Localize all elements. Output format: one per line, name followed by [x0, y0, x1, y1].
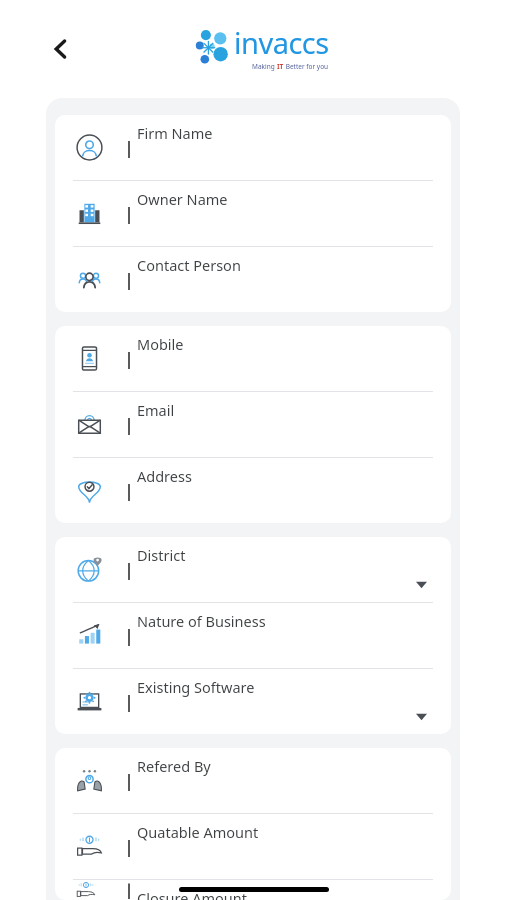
staticText: Existing Software [137, 677, 255, 697]
other: Refered by [55, 748, 123, 813]
button[interactable]: Email [55, 392, 451, 457]
staticText: invaccs [234, 23, 329, 62]
staticText: Making [252, 62, 277, 71]
staticText: IT [277, 62, 284, 71]
other: Quatable amount [55, 814, 123, 879]
button[interactable]: Closure amount [55, 880, 451, 900]
button[interactable]: Firm [55, 115, 451, 180]
staticText: Quatable Amount [137, 822, 259, 842]
staticText: Owner Name [137, 189, 228, 209]
other: Closure amount [55, 880, 123, 900]
button[interactable]: District [55, 537, 451, 602]
staticText: Refered By [137, 756, 211, 776]
other: Contact person [55, 247, 123, 312]
button[interactable]: Back [44, 32, 78, 66]
other: District [55, 537, 123, 602]
other: Nature of business [55, 603, 123, 668]
staticText: Nature of Business [137, 611, 266, 631]
staticText: Closure Amount [137, 888, 247, 900]
other: Existing software [55, 669, 123, 734]
staticText: Address [137, 466, 192, 486]
other: Email [55, 392, 123, 457]
button[interactable]: Existing software [55, 669, 451, 734]
staticText: District [137, 545, 186, 565]
other: Address [55, 458, 123, 523]
staticText: Firm Name [137, 123, 213, 143]
staticText: Contact Person [137, 255, 241, 275]
staticText: Mobile [137, 334, 184, 354]
button[interactable]: Address [55, 458, 451, 523]
button[interactable]: Nature of business [55, 603, 451, 668]
other: Mobile [55, 326, 123, 391]
button[interactable]: Refered by [55, 748, 451, 813]
button[interactable]: Owner [55, 181, 451, 246]
other: Firm [55, 115, 123, 180]
staticText: Email [137, 400, 175, 420]
staticText: Better for you [284, 62, 329, 71]
button[interactable]: Contact person [55, 247, 451, 312]
other: Owner [55, 181, 123, 246]
button[interactable]: Mobile [55, 326, 451, 391]
button[interactable]: Quatable amount [55, 814, 451, 879]
